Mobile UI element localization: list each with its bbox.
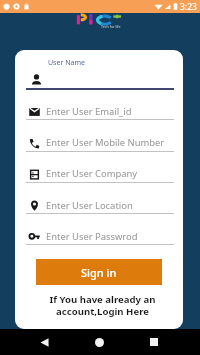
staticText: Enter User Company — [46, 167, 138, 180]
staticText: Enter User Location — [46, 199, 133, 212]
button[interactable]: If You have already an account,Login Her… — [18, 293, 183, 317]
staticText: Enter User Passwrod — [46, 230, 138, 243]
staticText: 3:23 — [180, 1, 197, 13]
staticText: User Name — [48, 58, 85, 68]
staticText: Tech for life — [101, 24, 121, 29]
staticText: Enter User Email_id — [46, 105, 132, 118]
button[interactable]: Recent apps — [141, 329, 167, 355]
staticText: Enter User Mobile Number — [46, 136, 165, 149]
staticText: Sign in — [81, 265, 117, 280]
button[interactable]: Home — [86, 329, 112, 355]
button[interactable]: Back — [31, 329, 57, 355]
button[interactable]: Sign in — [36, 259, 162, 285]
staticText: If You have already an account,Login Her… — [49, 293, 156, 317]
